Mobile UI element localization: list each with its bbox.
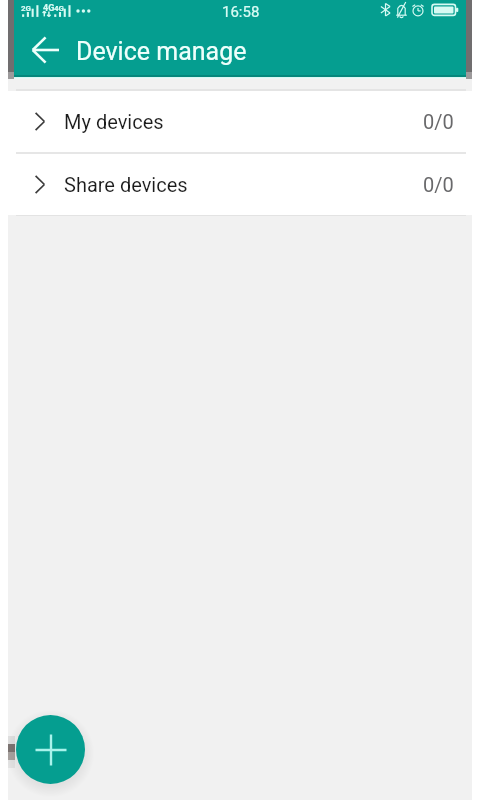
staticText: 2G (21, 4, 32, 13)
button[interactable]: Add device (16, 715, 85, 784)
staticText: Device manage (76, 37, 247, 66)
button[interactable]: My devices (8, 91, 472, 152)
staticText: 0/0 (423, 173, 454, 196)
button[interactable]: Share devices (8, 154, 472, 215)
staticText: 4G (43, 3, 55, 14)
staticText: 4G (54, 4, 65, 13)
staticText: 16:58 (222, 3, 260, 21)
button[interactable]: Back (20, 26, 68, 74)
staticText: 0/0 (423, 110, 454, 133)
staticText: My devices (64, 110, 164, 133)
staticText: Share devices (64, 173, 188, 196)
